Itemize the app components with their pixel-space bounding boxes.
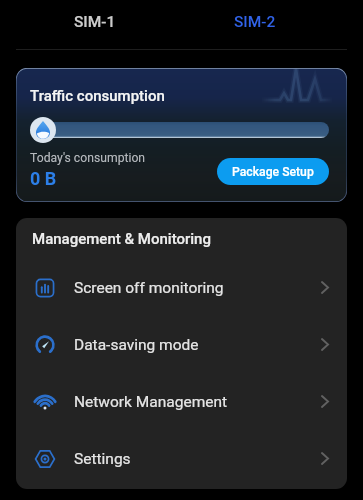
staticText: Network Management: [74, 393, 228, 411]
staticText: 0 B: [30, 168, 57, 189]
staticText: SIM-1: [74, 13, 116, 31]
button[interactable]: SIM-1: [0, 0, 181, 44]
staticText: SIM-2: [234, 13, 276, 31]
staticText: Management & Monitoring: [32, 230, 211, 248]
button[interactable]: Package Setup: [217, 158, 329, 185]
staticText: Package Setup: [232, 165, 314, 179]
staticText: Screen off monitoring: [74, 279, 224, 297]
button[interactable]: SIM-2: [181, 0, 363, 44]
staticText: Today's consumption: [30, 151, 146, 165]
button[interactable]: Data-saving mode: [16, 316, 347, 373]
staticText: Traffic consumption: [30, 87, 165, 105]
button[interactable]: Network Management: [16, 373, 347, 430]
button[interactable]: Settings: [16, 430, 347, 487]
staticText: Data-saving mode: [74, 336, 199, 354]
button[interactable]: Screen off monitoring: [16, 259, 347, 316]
staticText: Settings: [74, 450, 131, 468]
